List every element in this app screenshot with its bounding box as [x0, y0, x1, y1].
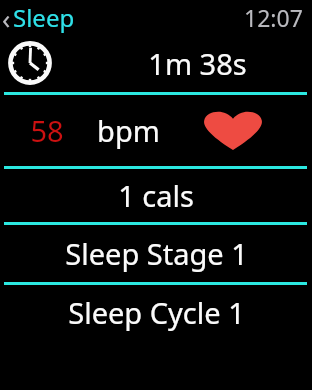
- staticText: Sleep Cycle 1: [68, 293, 245, 332]
- staticText: Sleep Stage 1: [65, 234, 248, 273]
- other: Heart rate: [203, 110, 263, 150]
- button[interactable]: Duration: [0, 34, 312, 92]
- staticText: ‹: [2, 0, 11, 34]
- staticText: 12:07: [244, 2, 303, 33]
- button[interactable]: Sleep Cycle 1: [0, 285, 312, 340]
- staticText: 1m 38s: [148, 44, 247, 83]
- other: Duration: [8, 41, 52, 85]
- staticText: Sleep: [13, 1, 75, 34]
- button[interactable]: 1 cals: [0, 169, 312, 222]
- staticText: bpm: [97, 111, 160, 150]
- staticText: 58: [30, 111, 64, 150]
- button[interactable]: Sleep Stage 1: [0, 225, 312, 282]
- staticText: 1 cals: [118, 176, 194, 215]
- button[interactable]: 58: [0, 95, 312, 166]
- button[interactable]: ‹: [0, 0, 81, 34]
